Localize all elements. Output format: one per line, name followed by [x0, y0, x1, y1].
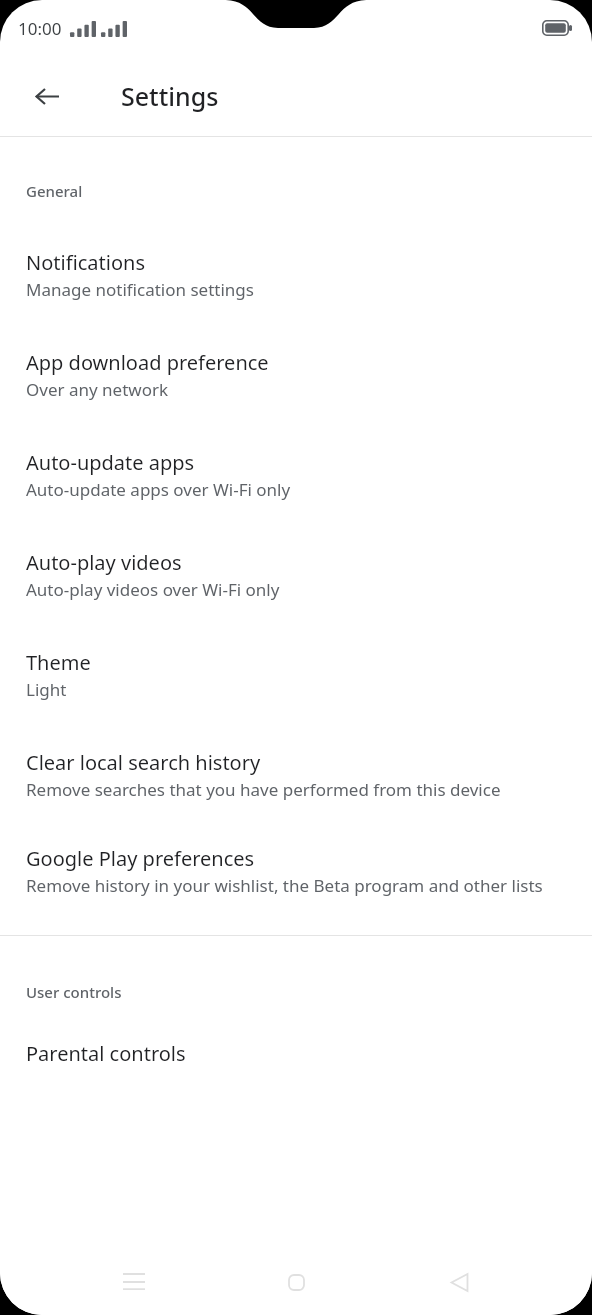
button[interactable]: Parental controls — [0, 1040, 592, 1067]
button[interactable]: Back — [430, 1253, 488, 1311]
button[interactable]: Back — [21, 70, 73, 122]
staticText: User controls — [26, 982, 122, 1002]
staticText: Remove history in your wishlist, the Bet… — [26, 874, 543, 897]
staticText: Theme — [26, 649, 91, 676]
button[interactable]: Theme — [0, 639, 592, 711]
staticText: Manage notification settings — [26, 278, 254, 301]
staticText: Clear local search history — [26, 749, 261, 776]
button[interactable]: Auto-update apps — [0, 439, 592, 511]
button[interactable]: Notifications — [0, 239, 592, 311]
staticText: Auto-update apps over Wi-Fi only — [26, 478, 291, 501]
staticText: Google Play preferences — [26, 845, 255, 872]
staticText: Auto-update apps — [26, 449, 195, 476]
button[interactable]: Home — [267, 1253, 325, 1311]
staticText: 10:00 — [18, 17, 62, 40]
staticText: App download preference — [26, 349, 269, 376]
staticText: Notifications — [26, 249, 145, 276]
staticText: Auto-play videos over Wi-Fi only — [26, 578, 280, 601]
button[interactable]: Recent apps — [105, 1253, 163, 1311]
staticText: Over any network — [26, 378, 169, 401]
staticText: General — [26, 181, 83, 201]
staticText: Settings — [121, 79, 219, 113]
button[interactable]: Auto-play videos — [0, 539, 592, 611]
staticText: Auto-play videos — [26, 549, 182, 576]
button[interactable]: Clear local search history — [0, 739, 592, 811]
button[interactable]: App download preference — [0, 339, 592, 411]
button[interactable]: Google Play preferences — [0, 835, 592, 907]
staticText: Light — [26, 678, 67, 701]
staticText: Remove searches that you have performed … — [26, 778, 501, 801]
